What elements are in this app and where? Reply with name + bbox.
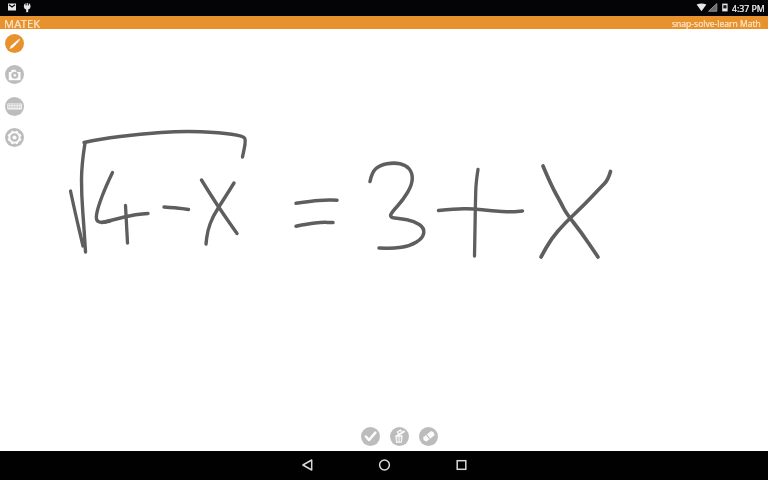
button[interactable]: Home	[370, 451, 399, 480]
button[interactable]: Recents	[447, 451, 476, 480]
button[interactable]: Pen	[5, 34, 24, 53]
staticText: 4:37 PM	[732, 3, 765, 15]
button[interactable]: Settings	[5, 128, 24, 147]
staticText: snap-solve-learn Math	[672, 18, 761, 30]
staticText: MATEK	[4, 16, 41, 29]
button[interactable]: Back	[293, 451, 322, 480]
button[interactable]: Delete	[390, 427, 409, 446]
button[interactable]: Erase	[419, 427, 438, 446]
button[interactable]: MATEK	[0, 16, 768, 29]
button[interactable]: Accept	[361, 427, 380, 446]
button[interactable]: Keyboard	[5, 97, 24, 116]
button[interactable]: Camera	[5, 65, 24, 84]
